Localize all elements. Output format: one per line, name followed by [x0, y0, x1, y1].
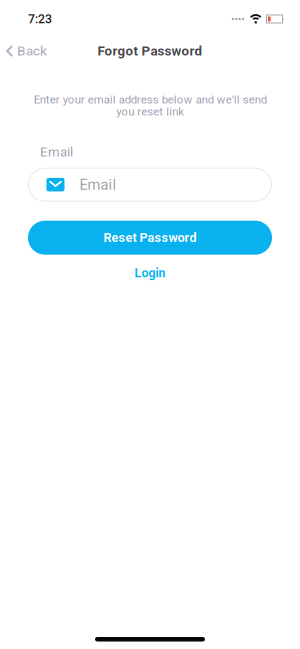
staticText: 7:23	[28, 12, 52, 26]
button[interactable]: Email	[28, 168, 272, 202]
staticText: Enter your email address below and we'll…	[33, 93, 266, 118]
staticText: Email	[40, 144, 73, 160]
staticText: Back	[17, 43, 47, 59]
staticText: Email	[79, 176, 116, 193]
staticText: Login	[134, 266, 165, 280]
staticText: Forgot Password	[97, 43, 202, 59]
button[interactable]: Back	[0, 43, 47, 59]
staticText: Reset Password	[103, 230, 196, 245]
button[interactable]: Login	[134, 266, 165, 280]
button[interactable]: Reset Password	[28, 221, 272, 255]
